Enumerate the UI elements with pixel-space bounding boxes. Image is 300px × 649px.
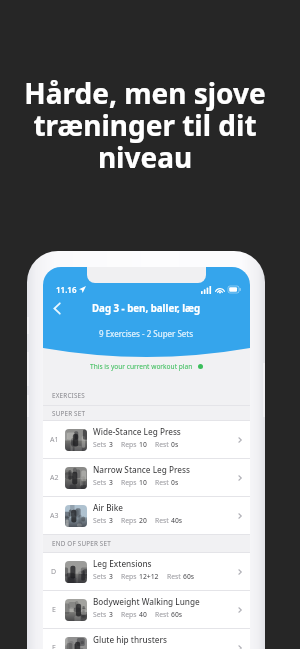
staticText: Reps — [121, 440, 137, 449]
staticText: Reps — [121, 478, 137, 487]
staticText: EXERCISES — [52, 391, 85, 400]
staticText: 0s — [171, 478, 179, 487]
staticText: Dag 3 - ben, baller, læg — [92, 302, 201, 315]
staticText: Reps — [121, 610, 137, 619]
staticText: 60s — [183, 572, 195, 581]
staticText: 9 Exercises - 2 Super Sets — [99, 328, 194, 339]
staticText: Reps — [121, 572, 137, 581]
staticText: Sets — [93, 516, 107, 525]
staticText: Sets — [93, 572, 107, 581]
button[interactable]: A3 — [43, 497, 250, 534]
staticText: 12+12 — [139, 572, 159, 581]
staticText: 3 — [109, 478, 113, 487]
staticText: Rest — [167, 572, 181, 581]
staticText: Sets — [93, 610, 107, 619]
staticText: 3 — [109, 572, 113, 581]
staticText: 0s — [171, 440, 179, 449]
staticText: A2 — [50, 473, 59, 483]
staticText: Sets — [93, 440, 107, 449]
staticText: Narrow Stance Leg Press — [93, 464, 190, 475]
staticText: F — [52, 643, 56, 649]
button[interactable]: F — [43, 629, 250, 649]
staticText: Leg Extensions — [93, 558, 152, 569]
staticText: 10 — [139, 440, 147, 449]
staticText: Bodyweight Walking Lunge — [93, 596, 200, 607]
staticText: Rest — [155, 478, 169, 487]
button[interactable]: E — [43, 591, 250, 628]
staticText: Reps — [121, 516, 137, 525]
staticText: Rest — [155, 516, 169, 525]
staticText: Rest — [155, 440, 169, 449]
staticText: D — [51, 567, 57, 577]
button[interactable]: A2 — [43, 459, 250, 496]
staticText: 10 — [139, 478, 147, 487]
staticText: A3 — [50, 511, 59, 521]
staticText: This is your current workout plan — [90, 362, 193, 371]
button[interactable]: Back — [46, 297, 68, 319]
staticText: A1 — [50, 435, 59, 445]
staticText: Hårde, men sjove træninger til dit nivea… — [24, 74, 266, 176]
staticText: E — [52, 605, 56, 615]
staticText: Air Bike — [93, 502, 124, 513]
staticText: 40s — [171, 516, 183, 525]
staticText: 3 — [109, 610, 113, 619]
button[interactable]: A1 — [43, 421, 250, 458]
staticText: 3 — [109, 440, 113, 449]
staticText: Glute hip thrusters — [93, 634, 167, 645]
staticText: Rest — [155, 610, 169, 619]
staticText: Wide-Stance Leg Press — [93, 426, 181, 437]
staticText: SUPER SET — [52, 409, 86, 418]
staticText: Sets — [93, 478, 107, 487]
staticText: 3 — [109, 516, 113, 525]
staticText: 60s — [171, 610, 183, 619]
staticText: END OF SUPER SET — [52, 539, 111, 548]
button[interactable]: D — [43, 553, 250, 590]
staticText: 11.16 — [56, 284, 77, 295]
staticText: 20 — [139, 516, 147, 525]
staticText: 40 — [139, 610, 147, 619]
